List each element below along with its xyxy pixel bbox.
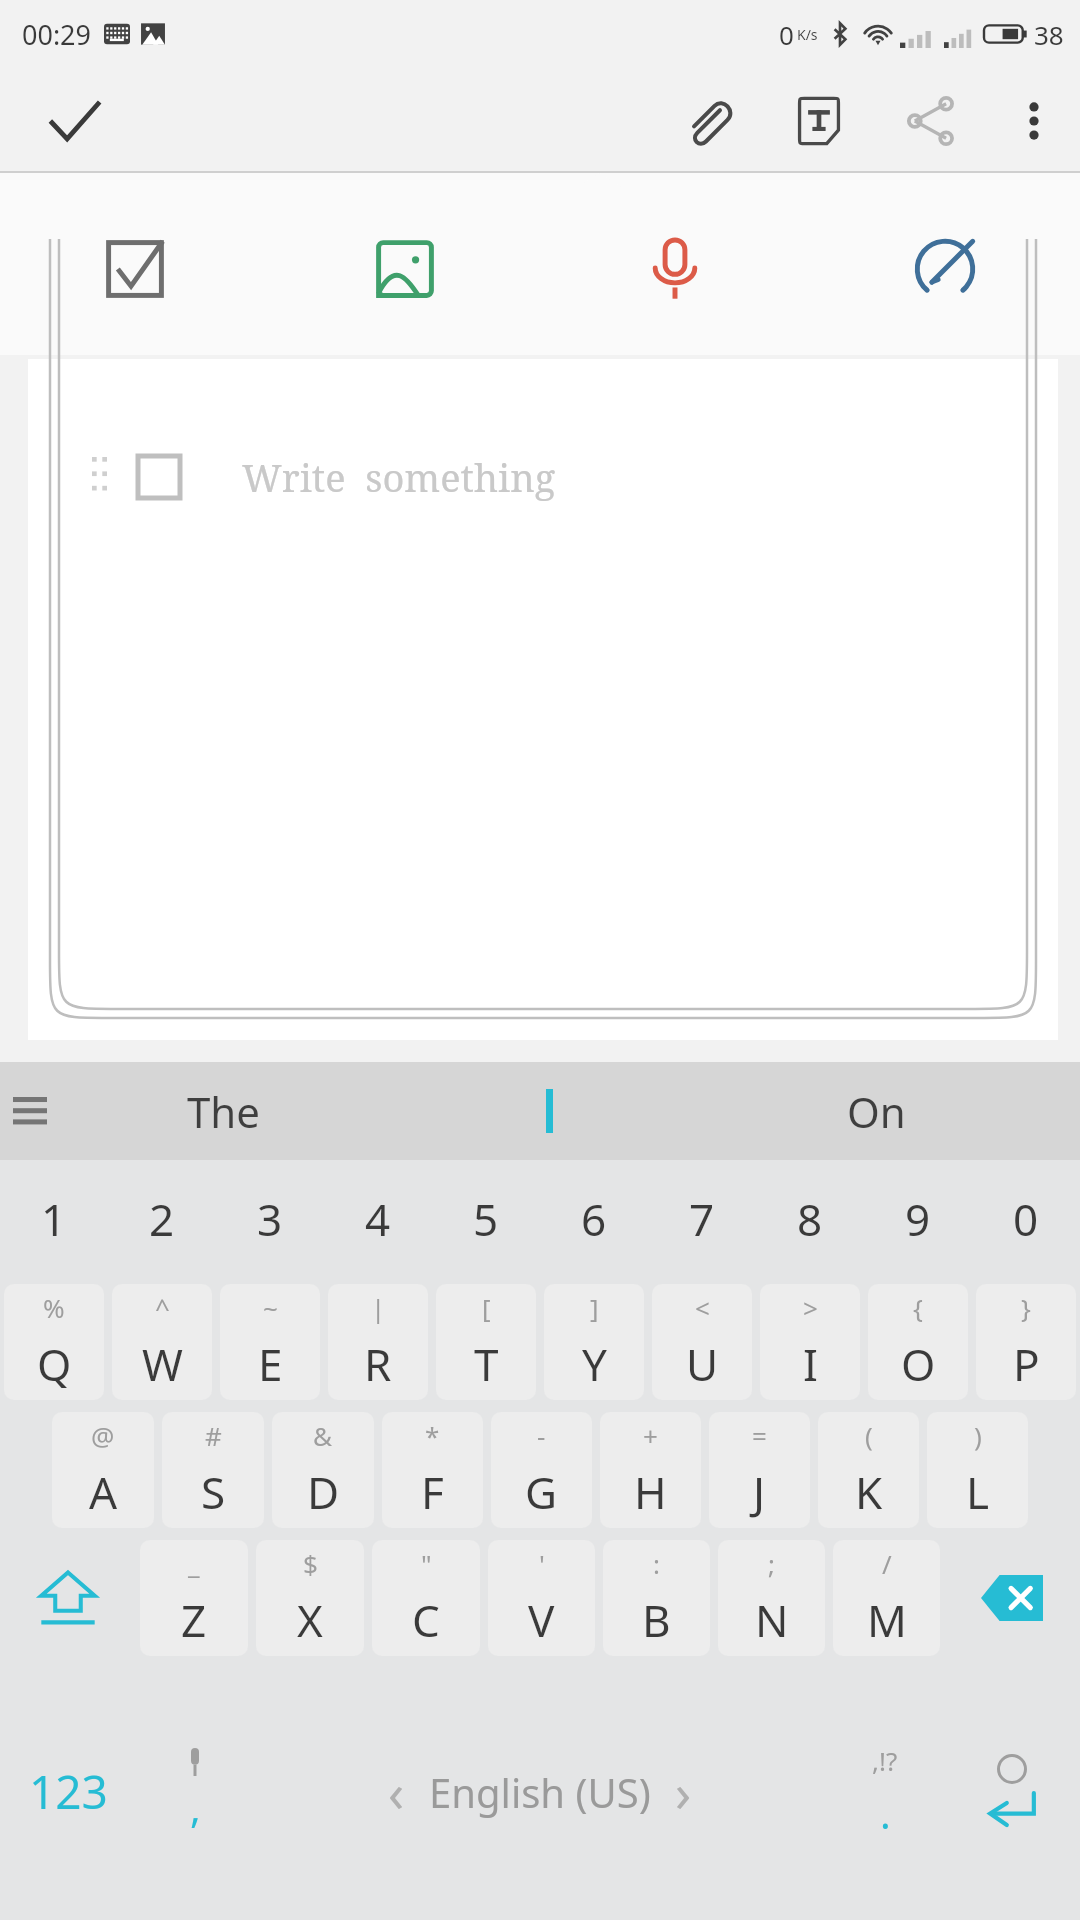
button[interactable]: " bbox=[372, 1540, 480, 1656]
staticText: H bbox=[634, 1462, 667, 1522]
button[interactable]: Text format bbox=[776, 78, 862, 164]
staticText: 5 bbox=[473, 1189, 499, 1249]
button[interactable]: @ bbox=[52, 1412, 154, 1528]
staticText: R bbox=[364, 1334, 392, 1394]
button[interactable]: 2 bbox=[108, 1160, 216, 1278]
button[interactable]: ) bbox=[927, 1412, 1028, 1528]
button[interactable]: Checklist bbox=[0, 183, 270, 355]
staticText: A bbox=[89, 1462, 118, 1522]
button[interactable]: 123 bbox=[0, 1662, 136, 1920]
staticText: On bbox=[847, 1083, 906, 1140]
button[interactable]: ~ bbox=[220, 1284, 320, 1400]
staticText: < bbox=[695, 1290, 710, 1325]
button[interactable]: 0 bbox=[972, 1160, 1080, 1278]
staticText: L bbox=[966, 1462, 990, 1522]
button[interactable]: Share bbox=[888, 78, 974, 164]
button[interactable]: < bbox=[652, 1284, 752, 1400]
button[interactable]: Attach bbox=[664, 78, 750, 164]
button[interactable]: > bbox=[760, 1284, 860, 1400]
button[interactable]: $ bbox=[256, 1540, 364, 1656]
staticText: U bbox=[686, 1334, 719, 1394]
staticText: | bbox=[371, 1290, 386, 1325]
button[interactable]: Backspace bbox=[948, 1538, 1076, 1658]
button[interactable]: / bbox=[833, 1540, 940, 1656]
button[interactable]: , bbox=[136, 1662, 254, 1920]
button[interactable]: Image bbox=[270, 183, 540, 355]
button[interactable]: ,!? bbox=[826, 1662, 944, 1920]
button[interactable]: Done bbox=[0, 68, 150, 173]
staticText: / bbox=[882, 1546, 892, 1581]
button[interactable]: + bbox=[600, 1412, 701, 1528]
button[interactable]: % bbox=[4, 1284, 104, 1400]
button[interactable]: ( bbox=[818, 1412, 919, 1528]
staticText: 1 bbox=[41, 1189, 67, 1249]
staticText: T bbox=[474, 1334, 499, 1394]
button[interactable]: * bbox=[382, 1412, 483, 1528]
button[interactable]: ] bbox=[544, 1284, 644, 1400]
button[interactable]: [ bbox=[436, 1284, 536, 1400]
button[interactable]: On bbox=[713, 1062, 1040, 1160]
button[interactable]: 4 bbox=[324, 1160, 432, 1278]
button[interactable]: ^ bbox=[112, 1284, 212, 1400]
staticText: S bbox=[201, 1462, 226, 1522]
button[interactable]: Shift bbox=[4, 1538, 132, 1658]
button[interactable]: The bbox=[60, 1062, 386, 1160]
staticText: = bbox=[752, 1418, 767, 1453]
staticText: J bbox=[753, 1462, 766, 1522]
button[interactable]: : bbox=[603, 1540, 710, 1656]
staticText: ) bbox=[974, 1418, 982, 1453]
button[interactable]: { bbox=[868, 1284, 968, 1400]
button[interactable]: Write something bbox=[28, 359, 1058, 1040]
button[interactable]: 3 bbox=[216, 1160, 324, 1278]
staticText: V bbox=[528, 1590, 555, 1650]
staticText: { bbox=[913, 1290, 923, 1325]
staticText: : bbox=[653, 1546, 660, 1581]
staticText: I bbox=[803, 1334, 818, 1394]
staticText: Z bbox=[181, 1590, 207, 1650]
staticText: ^ bbox=[155, 1290, 170, 1325]
staticText: 0 bbox=[779, 17, 794, 52]
button[interactable]: - bbox=[491, 1412, 592, 1528]
staticText: B bbox=[642, 1590, 671, 1650]
staticText: F bbox=[421, 1462, 444, 1522]
button[interactable]: | bbox=[328, 1284, 428, 1400]
staticText: M bbox=[867, 1590, 907, 1650]
button[interactable]: = bbox=[709, 1412, 810, 1528]
button[interactable] bbox=[386, 1062, 713, 1160]
button[interactable]: 5 bbox=[432, 1160, 540, 1278]
button[interactable]: # bbox=[162, 1412, 264, 1528]
button[interactable]: ‹ bbox=[254, 1662, 826, 1920]
button[interactable]: Draw bbox=[810, 183, 1080, 355]
button[interactable]: _ bbox=[140, 1540, 248, 1656]
staticText: , bbox=[190, 1780, 201, 1834]
staticText: Q bbox=[37, 1334, 72, 1394]
staticText: 123 bbox=[29, 1760, 108, 1823]
staticText: 4 bbox=[365, 1189, 391, 1249]
button[interactable]: 7 bbox=[648, 1160, 756, 1278]
staticText: English (US) bbox=[429, 1765, 651, 1819]
staticText: 38 bbox=[1034, 17, 1064, 52]
staticText: 00:29 bbox=[22, 16, 92, 53]
button[interactable]: 8 bbox=[756, 1160, 864, 1278]
button[interactable]: 1 bbox=[0, 1160, 108, 1278]
button[interactable]: ; bbox=[718, 1540, 825, 1656]
button[interactable]: Voice recording bbox=[540, 183, 810, 355]
staticText: 6 bbox=[581, 1189, 607, 1249]
button[interactable]: } bbox=[976, 1284, 1076, 1400]
staticText: . bbox=[880, 1786, 891, 1840]
button[interactable]: 6 bbox=[540, 1160, 648, 1278]
staticText: N bbox=[755, 1590, 789, 1650]
staticText: ] bbox=[590, 1290, 599, 1325]
staticText: W bbox=[142, 1334, 183, 1394]
staticText: ~ bbox=[263, 1290, 278, 1325]
button[interactable]: ' bbox=[488, 1540, 595, 1656]
button[interactable]: Menu bbox=[0, 1062, 60, 1160]
staticText: 8 bbox=[797, 1189, 823, 1249]
button[interactable]: & bbox=[272, 1412, 374, 1528]
staticText: P bbox=[1013, 1334, 1040, 1394]
staticText: % bbox=[43, 1290, 65, 1325]
staticText: 9 bbox=[905, 1189, 931, 1249]
button[interactable]: More options bbox=[988, 68, 1080, 173]
button[interactable]: Enter bbox=[944, 1662, 1080, 1920]
button[interactable]: 9 bbox=[864, 1160, 972, 1278]
